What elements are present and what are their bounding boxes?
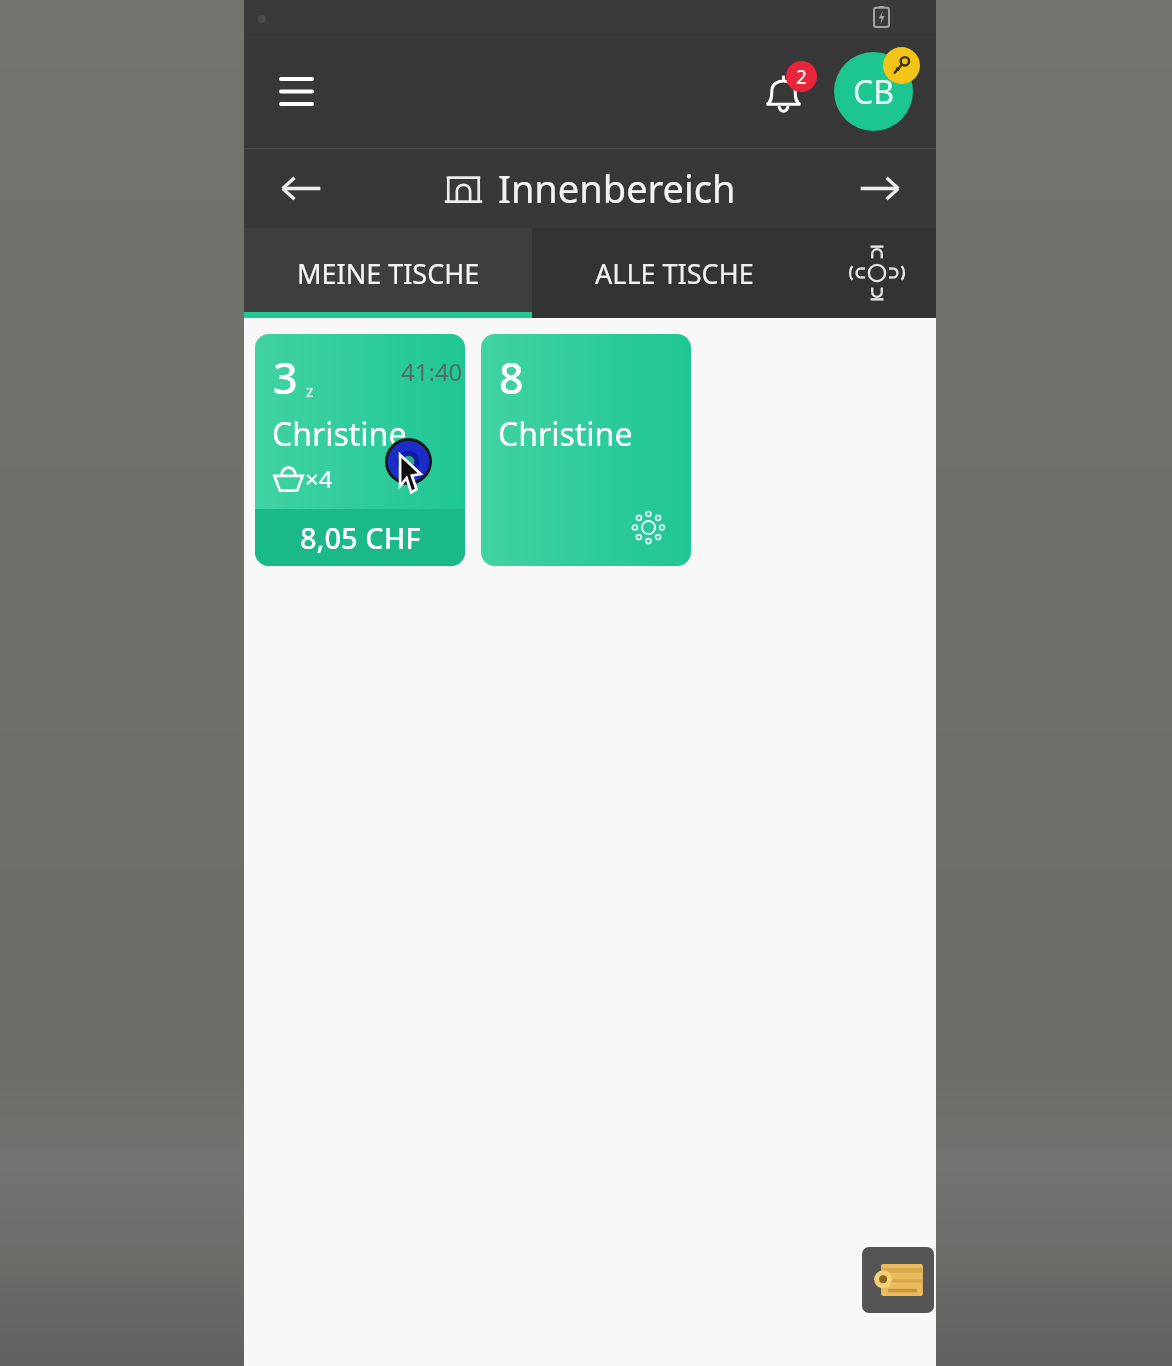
staticText: 41:40 xyxy=(401,355,463,388)
staticText: 8,05 CHF xyxy=(300,518,421,557)
staticText: z xyxy=(306,380,314,402)
button[interactable]: Profile CB xyxy=(830,48,916,134)
button[interactable]: Next area xyxy=(848,157,910,219)
staticText: Christine xyxy=(272,412,407,456)
staticText: 2 xyxy=(796,64,807,90)
staticText: 3 xyxy=(273,348,298,407)
staticText: ×4 xyxy=(305,462,333,495)
button[interactable]: ALLE TISCHE xyxy=(532,228,817,318)
staticText: 8 xyxy=(499,348,524,407)
button[interactable]: Table layout xyxy=(817,228,936,318)
button[interactable]: 3 xyxy=(255,334,465,566)
staticText: MEINE TISCHE xyxy=(297,255,480,292)
button[interactable]: MEINE TISCHE xyxy=(244,228,532,318)
staticText: Christine xyxy=(498,412,633,456)
staticText: Innenbereich xyxy=(498,162,736,214)
button[interactable]: Notifications xyxy=(747,55,819,127)
button[interactable]: Preview thumbnail xyxy=(862,1247,934,1313)
staticText: CB xyxy=(853,70,895,114)
button[interactable]: Previous area xyxy=(270,157,332,219)
button[interactable]: 8 xyxy=(481,334,691,566)
button[interactable]: Menu xyxy=(263,58,329,124)
staticText: ALLE TISCHE xyxy=(595,255,754,292)
